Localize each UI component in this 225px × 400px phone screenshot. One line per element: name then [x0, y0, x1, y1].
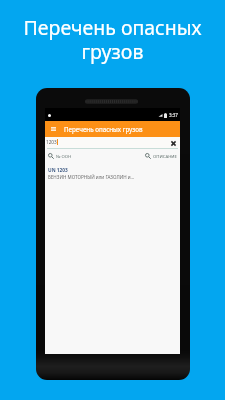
button[interactable]: UN 1203 — [45, 167, 180, 180]
staticText: 1203 — [46, 139, 57, 145]
staticText: Перечень опасных грузов — [64, 125, 143, 134]
staticText: Перечень опасных грузов — [0, 14, 225, 65]
button[interactable]: Clear search — [168, 138, 178, 148]
staticText: ОПИСАНИЕ — [153, 153, 177, 159]
button[interactable]: ОПИСАНИЕ — [112, 149, 180, 163]
button[interactable]: № ООН — [45, 149, 112, 163]
staticText: № ООН — [56, 153, 72, 159]
staticText: 3:37 — [169, 112, 178, 118]
staticText: UN 1203 — [48, 167, 68, 174]
button[interactable]: Open navigation menu — [45, 121, 61, 137]
staticText: БЕНЗИН МОТОРНЫЙ или ГАЗОЛИН и... — [48, 174, 135, 180]
